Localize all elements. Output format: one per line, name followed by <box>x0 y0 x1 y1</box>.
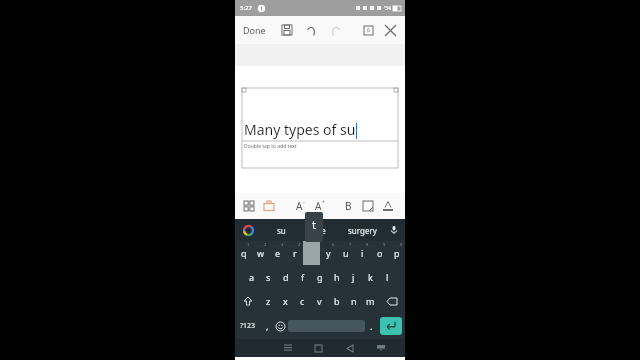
button[interactable]: Shape style <box>358 196 378 216</box>
button[interactable]: Bold <box>338 196 358 216</box>
button[interactable]: g <box>311 265 328 289</box>
staticText: m <box>366 295 375 307</box>
button[interactable]: k <box>362 265 379 289</box>
button[interactable]: Backspace <box>379 289 405 313</box>
button[interactable]: Voice input <box>383 219 405 241</box>
staticText: u <box>343 247 349 259</box>
button[interactable]: h <box>328 265 345 289</box>
staticText: y <box>326 247 331 259</box>
button[interactable]: Decrease text size <box>290 196 310 216</box>
staticText: t <box>312 217 316 232</box>
button[interactable]: o <box>371 241 388 265</box>
staticText: x <box>283 295 288 307</box>
button[interactable]: Redo <box>326 21 344 39</box>
button[interactable]: c <box>294 289 311 313</box>
staticText: q <box>241 247 247 259</box>
button[interactable]: j <box>345 265 362 289</box>
button[interactable]: m <box>362 289 379 313</box>
staticText: 4 <box>298 242 301 247</box>
button[interactable]: su <box>261 219 301 241</box>
button[interactable]: Increase text size <box>310 196 330 216</box>
staticText: B <box>345 199 352 213</box>
button[interactable]: i <box>354 241 371 265</box>
staticText: , <box>266 320 269 332</box>
button[interactable]: . <box>365 313 377 339</box>
staticText: Double tap to add text <box>244 143 297 150</box>
staticText: 1 <box>247 242 250 247</box>
button[interactable]: Many types of su <box>242 88 398 168</box>
staticText: v <box>317 295 322 307</box>
staticText: ?123 <box>240 321 256 331</box>
button[interactable]: e <box>269 241 286 265</box>
staticText: l <box>386 271 389 283</box>
staticText: k <box>368 271 373 283</box>
staticText: c <box>300 295 305 307</box>
button[interactable]: u <box>337 241 354 265</box>
staticText: + <box>322 199 325 206</box>
button[interactable]: Page count <box>359 21 377 39</box>
staticText: su <box>277 225 286 236</box>
button[interactable]: re <box>301 219 342 241</box>
button[interactable]: Close <box>381 21 399 39</box>
staticText: Many types of su <box>244 120 356 139</box>
button[interactable]: Save <box>278 21 296 39</box>
staticText: d <box>283 271 289 283</box>
staticText: n <box>351 295 357 307</box>
staticText: j <box>352 271 355 283</box>
button[interactable]: s <box>260 265 277 289</box>
button[interactable]: n <box>345 289 362 313</box>
button[interactable]: q <box>235 241 252 265</box>
staticText: s <box>266 271 271 283</box>
button[interactable]: Google <box>235 219 261 241</box>
button[interactable]: , <box>261 313 273 339</box>
button[interactable]: l <box>379 265 396 289</box>
button[interactable]: a <box>243 265 260 289</box>
button[interactable]: Insert <box>259 196 279 216</box>
staticText: - <box>303 199 305 206</box>
staticText: A <box>296 199 303 213</box>
staticText: Done <box>243 24 266 36</box>
staticText: h <box>334 271 340 283</box>
button[interactable]: Recents <box>272 339 303 357</box>
button[interactable]: v <box>311 289 328 313</box>
button[interactable]: Back <box>334 339 365 357</box>
button[interactable]: z <box>260 289 277 313</box>
staticText: b <box>334 295 340 307</box>
button[interactable]: Emoji <box>273 313 288 339</box>
staticText: r <box>293 247 297 259</box>
button[interactable]: p <box>388 241 405 265</box>
button[interactable]: y <box>320 241 337 265</box>
staticText: g <box>317 271 323 283</box>
staticText: p <box>394 247 400 259</box>
staticText: 3 <box>281 242 284 247</box>
staticText: a <box>249 271 255 283</box>
staticText: o <box>377 247 383 259</box>
button[interactable]: surgery <box>342 219 383 241</box>
button[interactable]: f <box>294 265 311 289</box>
staticText: i <box>361 247 364 259</box>
staticText: 6 <box>332 242 335 247</box>
button[interactable]: w <box>252 241 269 265</box>
staticText: 8 <box>366 242 369 247</box>
button[interactable]: x <box>277 289 294 313</box>
button[interactable]: Layout <box>239 196 259 216</box>
button[interactable]: d <box>277 265 294 289</box>
staticText: 6 <box>367 27 370 34</box>
button[interactable]: r <box>286 241 303 265</box>
staticText: re <box>318 225 326 236</box>
button[interactable] <box>303 241 320 265</box>
button[interactable]: b <box>328 289 345 313</box>
button[interactable]: ?123 <box>235 313 261 339</box>
button[interactable]: Done <box>241 20 268 40</box>
staticText: 9 <box>383 242 386 247</box>
staticText: z <box>266 295 271 307</box>
staticText: . <box>370 320 373 332</box>
staticText: 0 <box>400 242 403 247</box>
button[interactable]: Shift <box>235 289 260 313</box>
button[interactable]: Enter <box>380 317 402 335</box>
button[interactable]: Hide keyboard <box>365 339 396 357</box>
button[interactable]: Undo <box>302 21 320 39</box>
button[interactable]: Text color <box>378 196 398 216</box>
button[interactable]: Home <box>303 339 334 357</box>
